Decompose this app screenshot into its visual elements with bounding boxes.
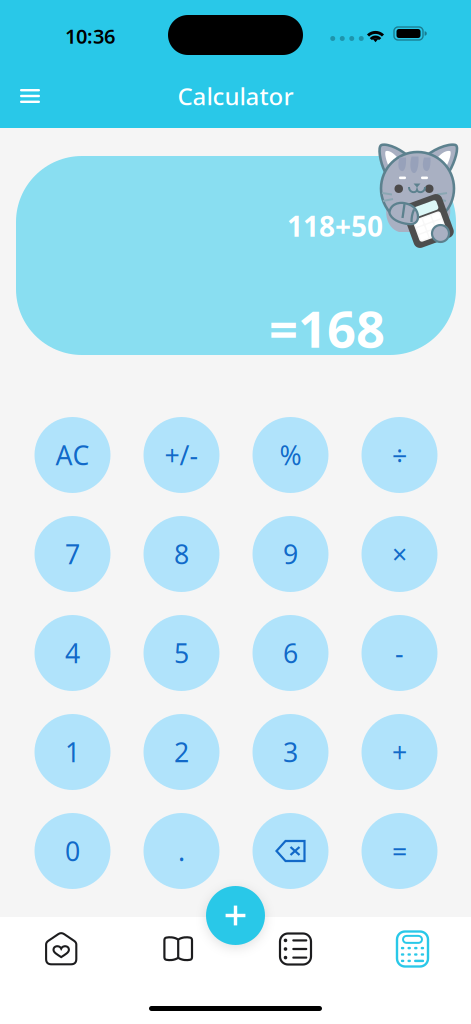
button[interactable]: - bbox=[361, 615, 437, 691]
staticText: Calculator bbox=[177, 80, 293, 112]
staticText: × bbox=[392, 536, 407, 572]
button[interactable]: 2 bbox=[143, 714, 219, 790]
button[interactable]: 8 bbox=[143, 516, 219, 592]
button[interactable]: % bbox=[252, 417, 328, 493]
staticText: 118+50 bbox=[287, 207, 383, 245]
button[interactable]: Calculator bbox=[354, 920, 471, 978]
button[interactable]: 7 bbox=[34, 516, 110, 592]
staticText: 1 bbox=[65, 734, 80, 770]
button[interactable]: AC bbox=[34, 417, 110, 493]
button[interactable]: 0 bbox=[34, 813, 110, 889]
staticText: 6 bbox=[283, 635, 298, 671]
staticText: 7 bbox=[65, 536, 80, 572]
button[interactable]: . bbox=[143, 813, 219, 889]
button[interactable]: Home bbox=[3, 920, 120, 978]
button[interactable]: 6 bbox=[252, 615, 328, 691]
staticText: =168 bbox=[269, 294, 385, 362]
button[interactable]: + bbox=[361, 714, 437, 790]
staticText: 9 bbox=[283, 536, 298, 572]
button[interactable]: 4 bbox=[34, 615, 110, 691]
staticText: 4 bbox=[65, 635, 80, 671]
button[interactable]: 5 bbox=[143, 615, 219, 691]
staticText: 3 bbox=[283, 734, 298, 770]
staticText: ÷ bbox=[392, 437, 407, 473]
staticText: . bbox=[178, 833, 185, 869]
staticText: 8 bbox=[174, 536, 189, 572]
staticText: 5 bbox=[174, 635, 189, 671]
button[interactable]: Add bbox=[206, 886, 265, 945]
button[interactable]: Delete bbox=[252, 813, 328, 889]
staticText: - bbox=[395, 635, 404, 671]
button[interactable]: 3 bbox=[252, 714, 328, 790]
button[interactable]: = bbox=[361, 813, 437, 889]
button[interactable]: Records bbox=[237, 920, 354, 978]
button[interactable]: × bbox=[361, 516, 437, 592]
staticText: AC bbox=[55, 437, 89, 473]
button[interactable]: 9 bbox=[252, 516, 328, 592]
button[interactable]: ÷ bbox=[361, 417, 437, 493]
staticText: % bbox=[279, 437, 301, 473]
button[interactable]: Menu bbox=[8, 74, 52, 118]
staticText: +/- bbox=[164, 437, 198, 473]
staticText: + bbox=[392, 734, 407, 770]
staticText: 10:36 bbox=[65, 23, 115, 49]
button[interactable]: Library bbox=[120, 920, 237, 978]
staticText: 0 bbox=[65, 833, 80, 869]
staticText: 2 bbox=[174, 734, 189, 770]
staticText: = bbox=[392, 833, 407, 869]
button[interactable]: 1 bbox=[34, 714, 110, 790]
button[interactable]: +/- bbox=[143, 417, 219, 493]
